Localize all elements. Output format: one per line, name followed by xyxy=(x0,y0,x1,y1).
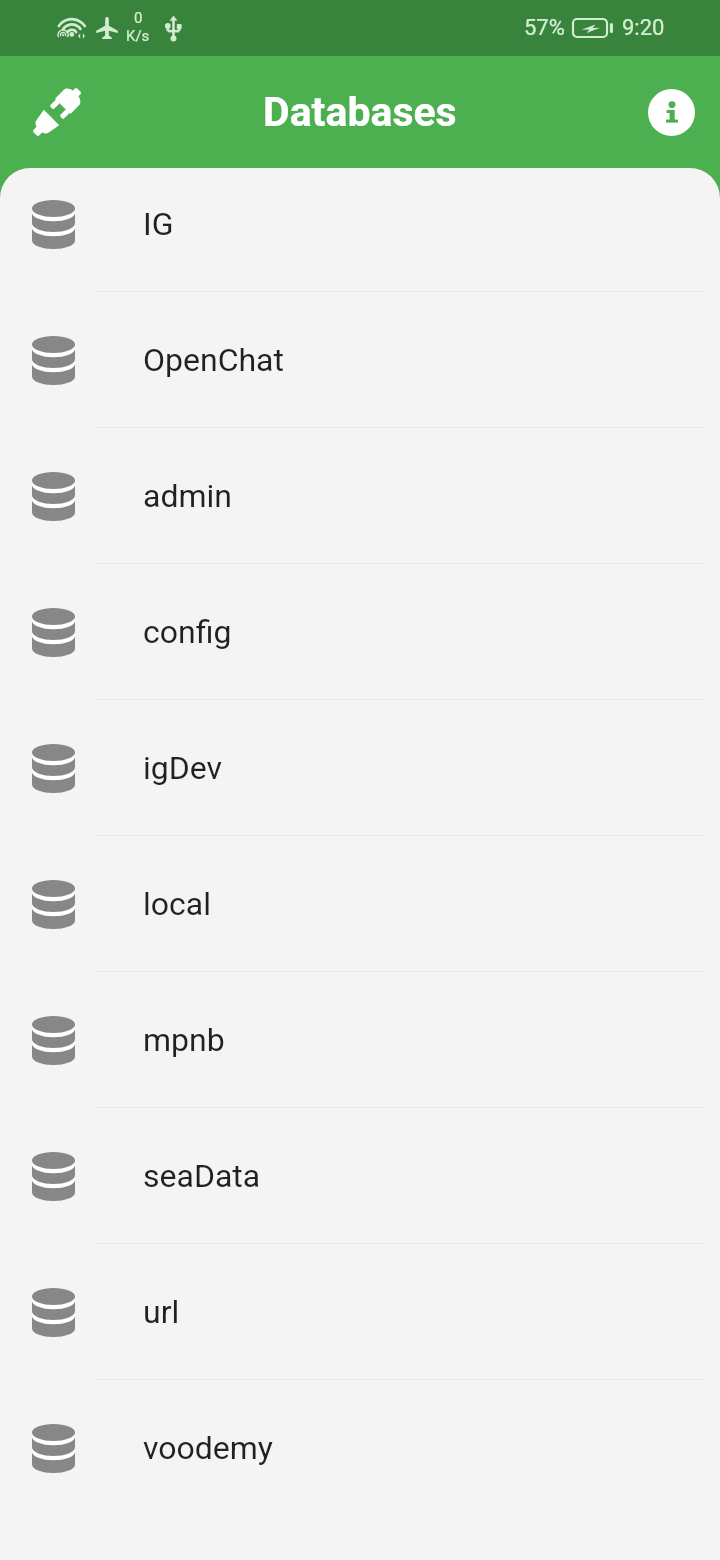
staticText: mpnb xyxy=(143,1021,225,1059)
staticText: config xyxy=(143,613,232,651)
button[interactable]: admin xyxy=(0,428,720,564)
staticText: OpenChat xyxy=(143,341,284,379)
staticText: voodemy xyxy=(143,1429,273,1467)
button[interactable]: voodemy xyxy=(0,1380,720,1516)
staticText: url xyxy=(143,1293,180,1331)
button[interactable]: Connections xyxy=(26,81,88,143)
staticText: IG xyxy=(143,205,174,243)
button[interactable]: url xyxy=(0,1244,720,1380)
button[interactable]: OpenChat xyxy=(0,292,720,428)
staticText: K/s xyxy=(126,27,150,45)
button[interactable]: Info xyxy=(648,89,695,136)
staticText: 0 xyxy=(134,9,143,27)
staticText: Databases xyxy=(263,88,457,136)
staticText: igDev xyxy=(143,749,223,787)
button[interactable]: seaData xyxy=(0,1108,720,1244)
button[interactable]: igDev xyxy=(0,700,720,836)
button[interactable]: mpnb xyxy=(0,972,720,1108)
button[interactable]: IG xyxy=(0,168,720,292)
staticText: 57% xyxy=(524,15,565,41)
staticText: seaData xyxy=(143,1157,261,1195)
button[interactable]: local xyxy=(0,836,720,972)
staticText: 9:20 xyxy=(622,15,665,41)
staticText: local xyxy=(143,885,211,923)
staticText: admin xyxy=(143,477,232,515)
button[interactable]: config xyxy=(0,564,720,700)
